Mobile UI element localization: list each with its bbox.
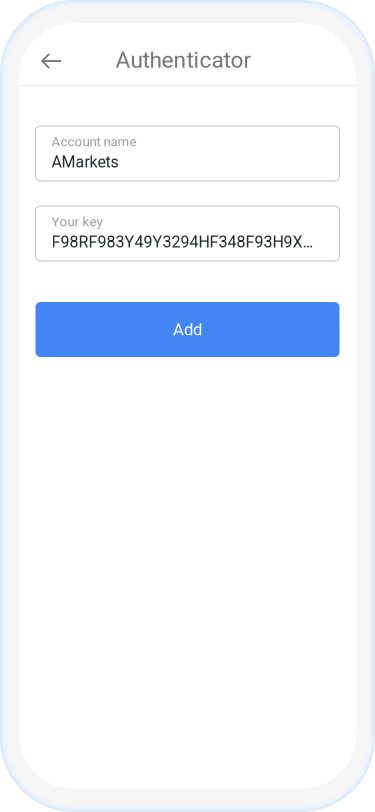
- staticText: F98RF983Y49Y3294HF348F93H9X…: [51, 233, 313, 251]
- staticText: AMarkets: [51, 153, 118, 171]
- button[interactable]: Add: [35, 302, 339, 357]
- button[interactable]: Back: [28, 32, 72, 76]
- staticText: Authenticator: [115, 47, 251, 73]
- staticText: Add: [173, 320, 202, 339]
- staticText: Your key: [51, 214, 102, 230]
- staticText: Account name: [51, 134, 136, 150]
